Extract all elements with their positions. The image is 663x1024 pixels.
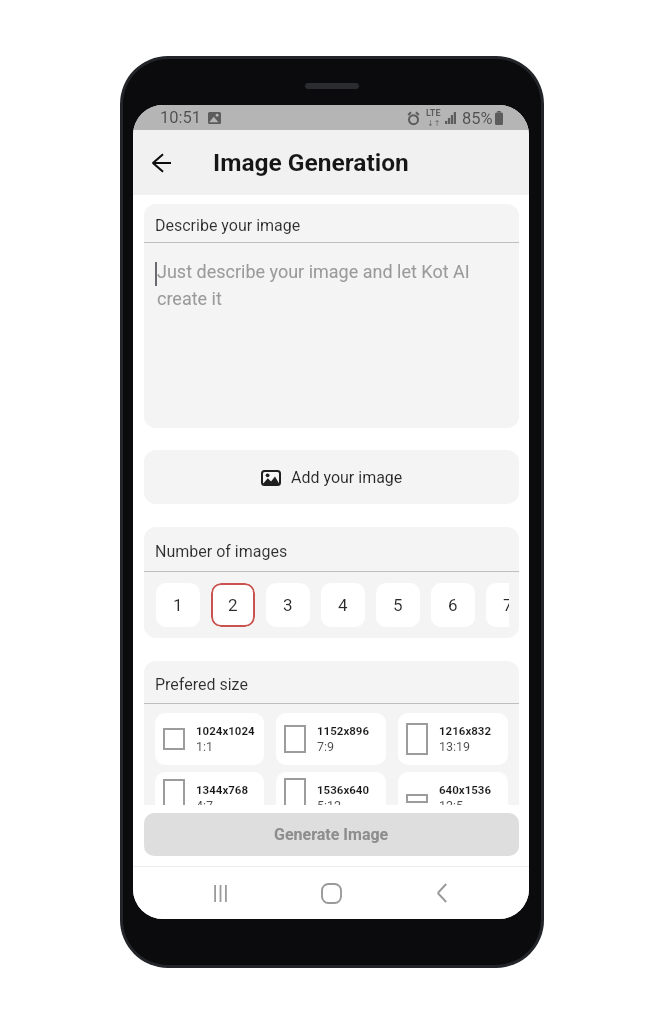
staticText: 12:5 [439, 798, 464, 805]
button[interactable]: 6 [431, 583, 475, 627]
button[interactable]: 1344x768 [155, 772, 264, 805]
staticText: 3 [283, 595, 293, 615]
staticText: Prefered size [155, 675, 248, 694]
staticText: 5 [393, 595, 403, 615]
staticText: 1024x1024 [196, 724, 255, 737]
staticText: 85% [462, 109, 493, 128]
staticText: 1 [173, 595, 183, 615]
button[interactable]: 1024x1024 [155, 713, 264, 765]
staticText: LTE [426, 108, 441, 119]
button[interactable]: Recent apps [196, 869, 244, 917]
staticText: Generate Image [274, 825, 389, 844]
button[interactable]: 1536x640 [276, 772, 386, 805]
staticText: ↓↑ [427, 119, 441, 128]
staticText: 1152x896 [317, 724, 370, 737]
button[interactable]: Add your image [144, 450, 519, 504]
staticText: 10:51 [160, 108, 202, 127]
button[interactable]: 2 [211, 583, 255, 627]
staticText: Describe your image [155, 216, 301, 235]
button[interactable]: 1216x832 [398, 713, 508, 765]
button[interactable]: Back [141, 143, 181, 183]
staticText: 1:1 [196, 739, 214, 754]
button[interactable]: 3 [266, 583, 310, 627]
button[interactable]: Describe your image [144, 204, 519, 428]
staticText: Just describe your image and let Kot AI … [157, 261, 475, 309]
staticText: Image Generation [213, 148, 409, 177]
button[interactable]: 1152x896 [276, 713, 386, 765]
button[interactable]: 5 [376, 583, 420, 627]
staticText: 7 [503, 595, 509, 615]
staticText: 1344x768 [196, 783, 249, 796]
staticText: 7:9 [317, 739, 335, 754]
staticText: 13:19 [439, 739, 471, 754]
staticText: 4 [338, 595, 348, 615]
staticText: 640x1536 [439, 783, 492, 796]
button[interactable]: 4 [321, 583, 365, 627]
button[interactable]: 640x1536 [398, 772, 508, 805]
staticText: 5:12 [317, 798, 342, 805]
button[interactable]: Home [307, 869, 355, 917]
staticText: 1536x640 [317, 783, 370, 796]
button[interactable]: 1 [156, 583, 200, 627]
button[interactable]: 7 [486, 583, 509, 627]
staticText: 4:7 [196, 798, 214, 805]
staticText: 2 [228, 595, 238, 615]
staticText: 6 [448, 595, 458, 615]
staticText: Number of images [155, 542, 288, 561]
staticText: 1216x832 [439, 724, 492, 737]
button[interactable]: Generate Image [144, 813, 519, 856]
button[interactable]: Back [418, 869, 466, 917]
staticText: Add your image [291, 468, 403, 487]
